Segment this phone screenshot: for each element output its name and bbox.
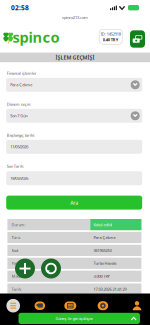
staticText: 18/03/2026	[10, 175, 28, 181]
staticText: Son 7 Gün	[10, 113, 27, 118]
staticText: Kabul edildi	[93, 222, 112, 227]
button[interactable]: 11/03/2026	[6, 140, 142, 154]
button[interactable]: Games	[58, 298, 82, 314]
staticText: Ara	[70, 199, 78, 206]
staticText: Başlangıç tarihi:	[7, 132, 35, 138]
button[interactable]: Settings	[91, 298, 115, 314]
button[interactable]: Menu	[1, 298, 25, 314]
button[interactable]: Support	[28, 298, 52, 314]
staticText: 361965253	[93, 248, 111, 253]
staticText: spinco	[12, 27, 59, 47]
staticText: Son Tarih:	[7, 163, 24, 169]
staticText: Dönem seçin:	[7, 101, 31, 107]
staticText: Turbo Havale	[93, 261, 116, 266]
staticText: spinco213.com	[62, 15, 88, 20]
staticText: İŞLEM GEÇMİŞİ	[55, 54, 94, 61]
staticText: Güneş ile görüşülüyor	[55, 316, 93, 321]
staticText: ID: 1452918	[101, 31, 121, 37]
staticText: 17.03.2026 21:41:29	[93, 286, 126, 292]
staticText: Para Çekme	[10, 82, 32, 87]
staticText: Yöntem:	[12, 261, 26, 266]
button[interactable]: Son 7 Gün	[6, 109, 142, 123]
button[interactable]: Add	[15, 258, 35, 278]
button[interactable]: Para Çekme	[6, 78, 142, 92]
button[interactable]: Ara	[6, 196, 142, 210]
button[interactable]: WhatsApp	[41, 258, 61, 278]
staticText: Türü:	[12, 235, 21, 240]
staticText: Miktar:	[12, 273, 25, 279]
button[interactable]: Wallet	[130, 30, 145, 48]
button[interactable]: Profile	[125, 298, 149, 314]
staticText: 0.40 TRY	[103, 37, 119, 42]
staticText: Durum:	[12, 222, 26, 227]
staticText: Kod:	[12, 248, 19, 253]
staticText: 11/03/2026	[10, 144, 28, 149]
staticText: Para Çekme	[93, 235, 115, 240]
staticText: 02:58	[11, 3, 29, 12]
staticText: Finansal işlemler	[7, 70, 37, 76]
button[interactable]: 18/03/2026	[6, 171, 142, 185]
staticText: Tarih:	[12, 286, 22, 292]
staticText: 3.000 TRY	[93, 273, 109, 279]
